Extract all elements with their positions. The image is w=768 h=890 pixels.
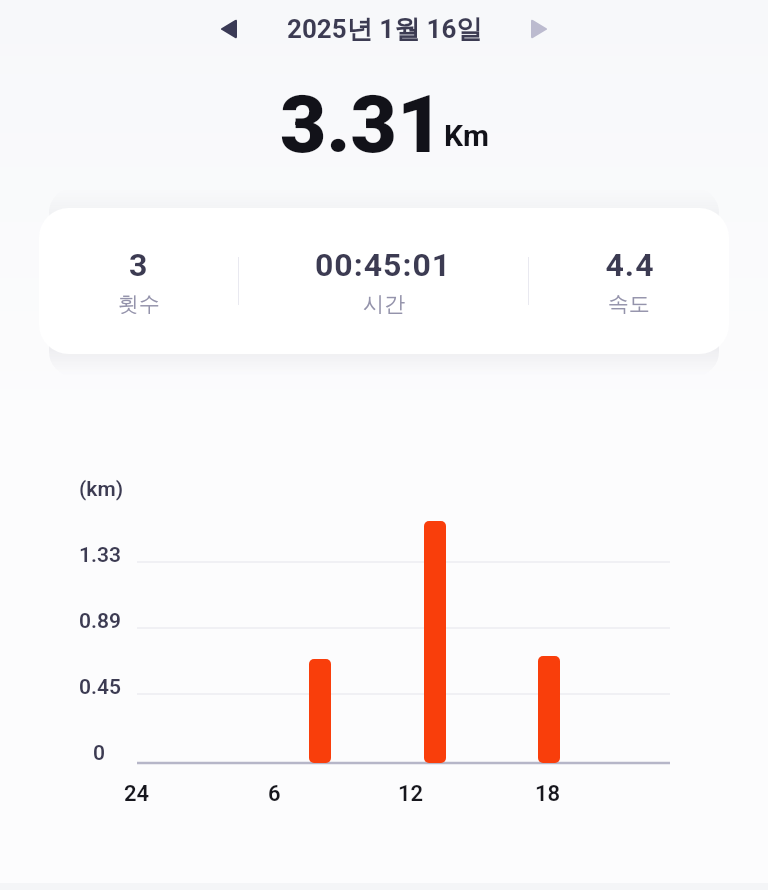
staticText: 속도 <box>608 291 650 317</box>
staticText: (km) <box>79 477 123 502</box>
button[interactable]: 00:45:01 <box>239 208 528 354</box>
staticText: 24 <box>124 781 150 807</box>
button[interactable]: 3 <box>39 208 238 354</box>
staticText: 18 <box>535 781 561 807</box>
button[interactable]: Previous day <box>202 6 254 52</box>
staticText: 3.31 <box>280 78 444 172</box>
staticText: 6 <box>268 781 281 807</box>
button[interactable]: 4.4 <box>529 208 729 354</box>
staticText: 3 <box>129 246 149 284</box>
staticText: 1.33 <box>79 543 121 568</box>
staticText: 0.45 <box>79 675 121 700</box>
staticText: 횟수 <box>118 291 160 317</box>
staticText: 시간 <box>363 291 405 317</box>
staticText: 0 <box>93 741 105 766</box>
staticText: 0.89 <box>79 609 121 634</box>
staticText: 00:45:01 <box>315 246 452 284</box>
staticText: Km <box>444 118 489 153</box>
staticText: 2025년 1월 16일 <box>287 13 483 46</box>
staticText: 12 <box>398 781 424 807</box>
button[interactable]: Next day <box>513 6 565 52</box>
staticText: 4.4 <box>605 246 654 284</box>
